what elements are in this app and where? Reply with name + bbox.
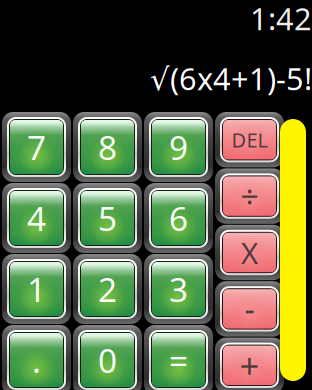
button[interactable]: 2 bbox=[73, 254, 142, 324]
button[interactable]: + bbox=[215, 338, 284, 390]
staticText: 1 bbox=[27, 267, 46, 311]
staticText: 5 bbox=[98, 196, 117, 240]
button[interactable]: 8 bbox=[73, 112, 142, 182]
button[interactable]: 6 bbox=[144, 183, 213, 253]
staticText: 9 bbox=[169, 125, 188, 169]
button[interactable]: 3 bbox=[144, 254, 213, 324]
button[interactable]: ÷ bbox=[215, 168, 284, 224]
staticText: 0 bbox=[98, 338, 117, 382]
button[interactable]: - bbox=[215, 281, 284, 337]
button[interactable]: 0 bbox=[73, 325, 142, 390]
staticText: - bbox=[244, 288, 254, 330]
staticText: 7 bbox=[27, 125, 46, 169]
staticText: √(6x4+1)-5! bbox=[150, 58, 312, 99]
staticText: 1:42 bbox=[250, 0, 312, 39]
staticText: DEL bbox=[231, 126, 267, 153]
button[interactable]: X bbox=[215, 225, 284, 280]
staticText: 4 bbox=[27, 196, 46, 240]
staticText: . bbox=[32, 338, 41, 382]
button[interactable]: 1 bbox=[2, 254, 71, 324]
button[interactable]: . bbox=[2, 325, 71, 390]
staticText: 2 bbox=[98, 267, 117, 311]
button[interactable]: 5 bbox=[73, 183, 142, 253]
staticText: X bbox=[241, 233, 258, 272]
staticText: 8 bbox=[98, 125, 117, 169]
staticText: + bbox=[239, 342, 259, 388]
staticText: ÷ bbox=[240, 175, 258, 217]
staticText: 3 bbox=[169, 267, 188, 311]
button[interactable]: 7 bbox=[2, 112, 71, 182]
button[interactable]: 4 bbox=[2, 183, 71, 253]
button[interactable]: = bbox=[144, 325, 213, 390]
button[interactable]: DEL bbox=[215, 112, 284, 167]
button[interactable]: 9 bbox=[144, 112, 213, 182]
staticText: = bbox=[169, 338, 188, 382]
staticText: 6 bbox=[169, 196, 188, 240]
